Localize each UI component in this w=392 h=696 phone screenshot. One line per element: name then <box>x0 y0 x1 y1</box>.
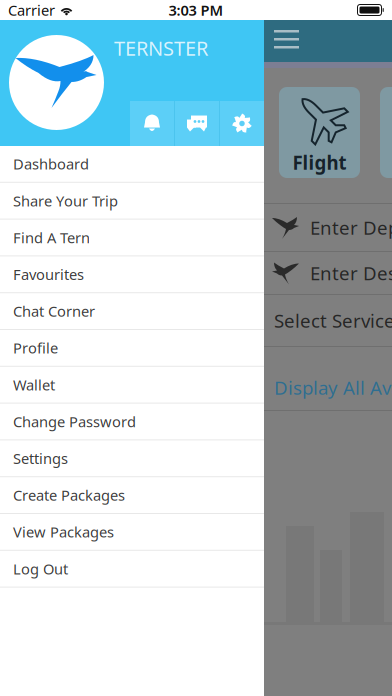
staticText: Change Password <box>13 412 136 431</box>
button[interactable]: View Packages <box>0 514 264 551</box>
staticText: Share Your Trip <box>13 191 118 210</box>
staticText: Wallet <box>13 375 55 394</box>
staticText: Select Service: <box>274 308 392 333</box>
button[interactable]: Create Packages <box>0 477 264 514</box>
button[interactable]: Messages <box>175 101 219 146</box>
button[interactable]: Hotel <box>380 87 392 178</box>
button[interactable]: Settings <box>0 440 264 477</box>
staticText: Profile <box>13 338 58 358</box>
staticText: 3:03 PM <box>168 0 223 20</box>
staticText: Dashboard <box>13 154 89 174</box>
staticText: Carrier <box>8 0 55 20</box>
staticText: TERNSTER <box>114 35 208 61</box>
staticText: Display All Available Flights <box>274 375 392 400</box>
staticText: Chat Corner <box>13 301 95 321</box>
button[interactable]: Share Your Trip <box>0 183 264 220</box>
button[interactable]: Notifications <box>130 101 174 146</box>
button[interactable]: Enter Destination <box>264 252 392 294</box>
staticText: Favourites <box>13 265 84 284</box>
staticText: Find A Tern <box>13 228 90 247</box>
staticText: Log Out <box>13 559 68 578</box>
button[interactable]: Settings <box>220 101 264 146</box>
button[interactable]: Wallet <box>0 367 264 404</box>
staticText: Enter Destination <box>310 261 392 285</box>
button[interactable]: Dashboard <box>0 146 264 183</box>
staticText: Enter Departure <box>310 215 392 240</box>
staticText: Create Packages <box>13 485 125 505</box>
button[interactable]: Change Password <box>0 404 264 440</box>
staticText: View Packages <box>13 522 114 542</box>
button[interactable]: Find A Tern <box>0 220 264 256</box>
button[interactable]: Favourites <box>0 256 264 293</box>
staticText: Settings <box>13 449 68 468</box>
staticText: Flight <box>292 150 346 175</box>
button[interactable]: Flight <box>279 87 360 178</box>
button[interactable]: Enter Departure <box>264 204 392 251</box>
button[interactable]: Log Out <box>0 551 264 588</box>
button[interactable]: Profile <box>0 330 264 367</box>
button[interactable]: Chat Corner <box>0 293 264 330</box>
